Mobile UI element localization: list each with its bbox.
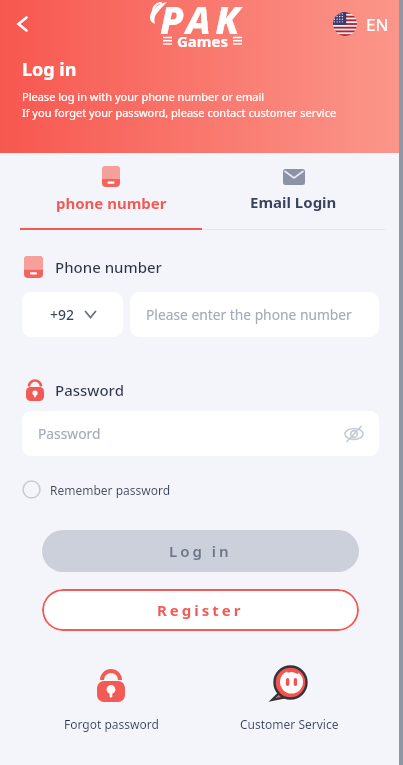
button[interactable]: Password xyxy=(22,411,379,456)
staticText: Email Login xyxy=(250,192,337,212)
staticText: Remember password xyxy=(50,482,171,498)
staticText: Phone number xyxy=(55,257,162,277)
button[interactable]: Customer Service xyxy=(200,663,379,732)
staticText: +92 xyxy=(50,305,75,324)
staticText: Password xyxy=(55,380,124,400)
staticText: EN xyxy=(366,13,389,36)
staticText: Log in xyxy=(169,541,232,561)
staticText: Games xyxy=(177,31,228,51)
staticText: Please log in with your phone number or … xyxy=(22,89,265,104)
staticText: Password xyxy=(38,424,101,443)
staticText: Forgot password xyxy=(64,716,159,732)
staticText: PAK xyxy=(160,0,244,45)
button[interactable]: Log in xyxy=(42,530,359,572)
staticText: phone number xyxy=(56,193,167,213)
button[interactable] xyxy=(8,10,36,38)
staticText: Register xyxy=(157,600,244,620)
button[interactable]: Please enter the phone number xyxy=(130,292,379,337)
button[interactable]: Register xyxy=(42,589,359,631)
button[interactable]: phone number xyxy=(20,153,202,230)
button[interactable]: Remember password xyxy=(22,480,171,499)
button[interactable]: Email Login xyxy=(202,153,385,230)
button[interactable]: +92 xyxy=(22,292,123,337)
staticText: Please enter the phone number xyxy=(146,305,352,324)
button[interactable]: Forgot password xyxy=(22,663,200,732)
staticText: If you forget your password, please cont… xyxy=(22,105,337,120)
staticText: Log in xyxy=(22,57,77,82)
staticText: Customer Service xyxy=(240,716,339,732)
button[interactable]: EN xyxy=(333,12,389,36)
